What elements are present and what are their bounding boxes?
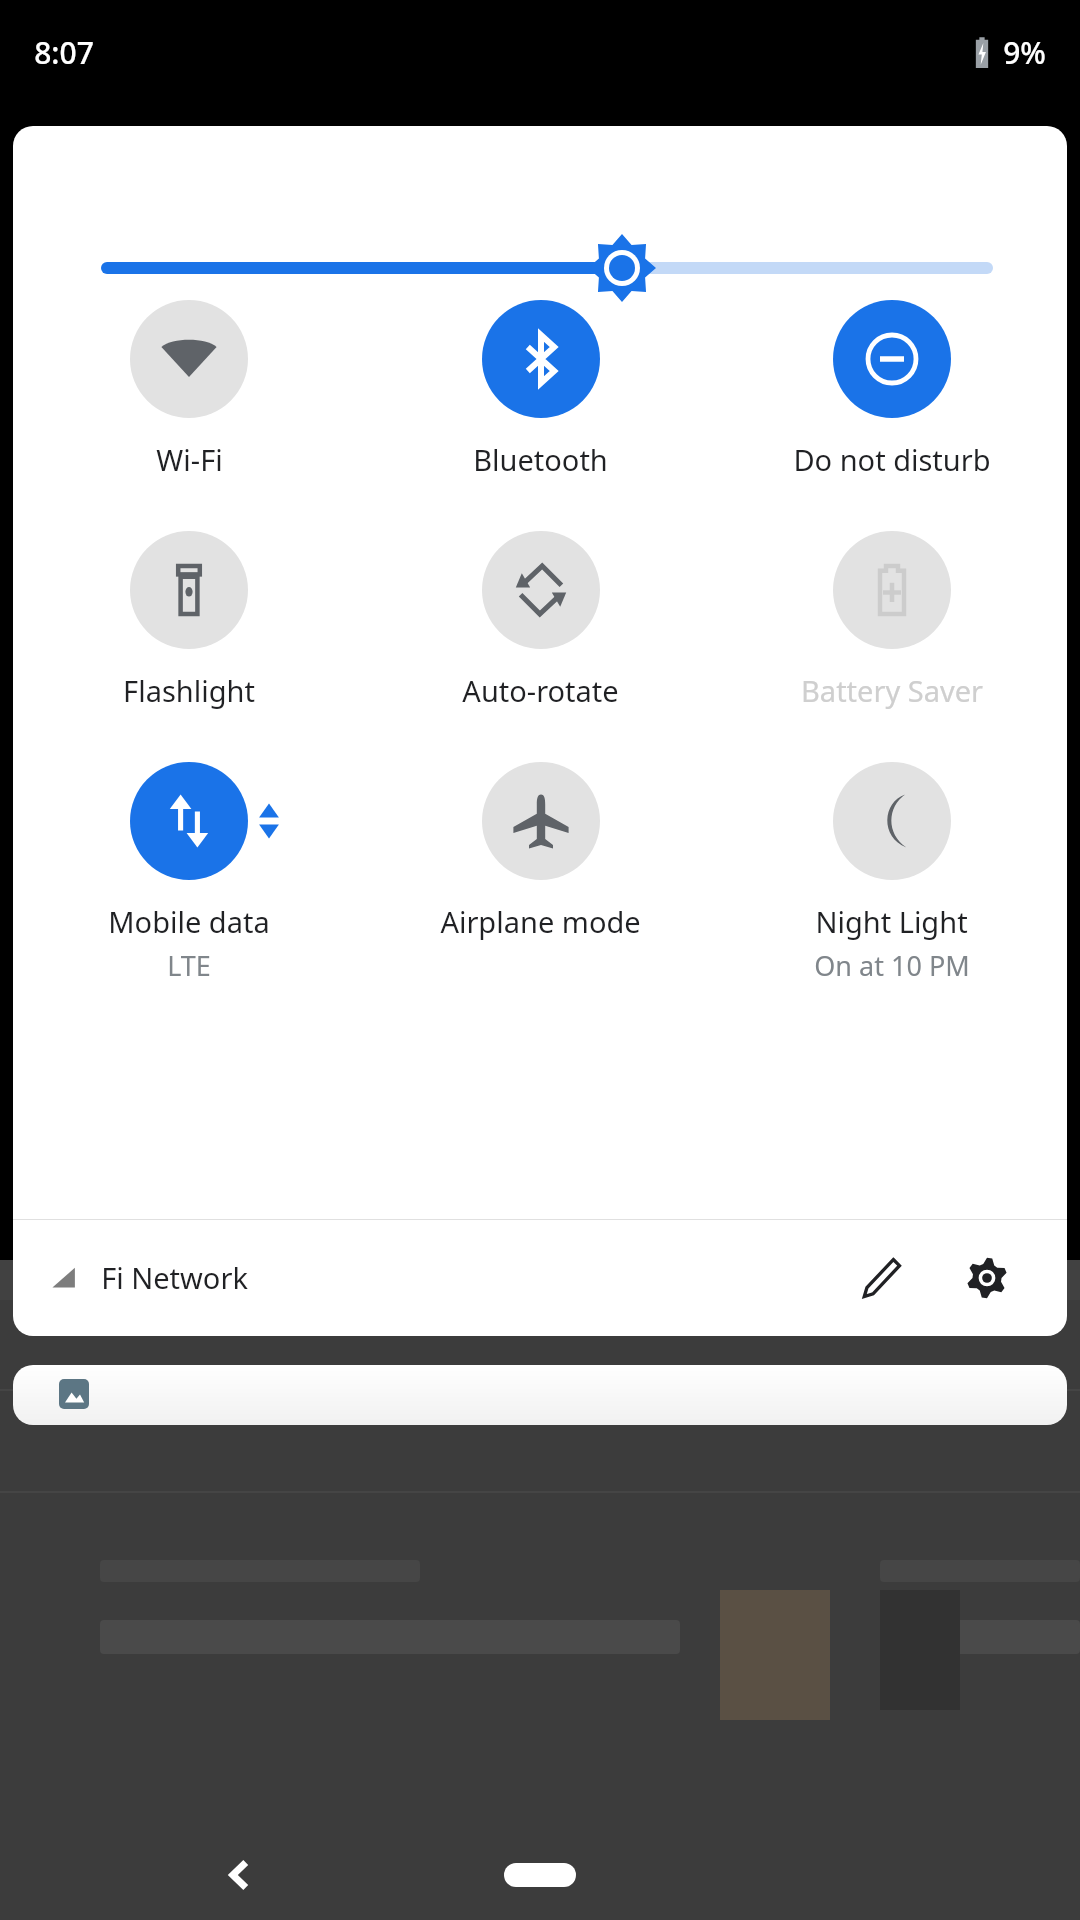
staticText: 8:07 bbox=[34, 32, 94, 73]
staticText: Bluetooth bbox=[473, 440, 608, 479]
staticText: 9% bbox=[1003, 32, 1046, 73]
button[interactable]: Bluetooth bbox=[365, 296, 716, 483]
button[interactable]: Battery Saver bbox=[716, 527, 1067, 714]
button[interactable]: Mobile data bbox=[13, 758, 365, 988]
button[interactable]: Fi Network bbox=[47, 1248, 248, 1307]
staticText: On at 10 PM bbox=[814, 947, 970, 984]
staticText: Airplane mode bbox=[440, 902, 641, 941]
staticText: Auto-rotate bbox=[462, 671, 619, 710]
staticText: Night Light bbox=[815, 902, 968, 941]
staticText: Do not disturb bbox=[793, 440, 991, 479]
button[interactable]: Flashlight bbox=[13, 527, 365, 714]
button[interactable]: Settings bbox=[947, 1238, 1027, 1318]
button[interactable]: Home bbox=[495, 1855, 585, 1895]
staticText: Battery Saver bbox=[801, 671, 983, 710]
button[interactable]: Airplane mode bbox=[365, 758, 716, 945]
staticText: LTE bbox=[167, 947, 211, 984]
button[interactable]: Brightness bbox=[13, 126, 1067, 306]
button[interactable]: Edit bbox=[841, 1238, 921, 1318]
staticText: Wi-Fi bbox=[156, 440, 223, 479]
staticText: Fi Network bbox=[101, 1258, 248, 1297]
staticText: Mobile data bbox=[108, 902, 270, 941]
button[interactable]: Back bbox=[200, 1835, 280, 1915]
button[interactable]: Wi-Fi bbox=[13, 296, 365, 483]
staticText: Flashlight bbox=[123, 671, 255, 710]
button[interactable]: Night Light bbox=[716, 758, 1067, 988]
button[interactable]: Auto-rotate bbox=[365, 527, 716, 714]
button[interactable]: Do not disturb bbox=[716, 296, 1067, 483]
